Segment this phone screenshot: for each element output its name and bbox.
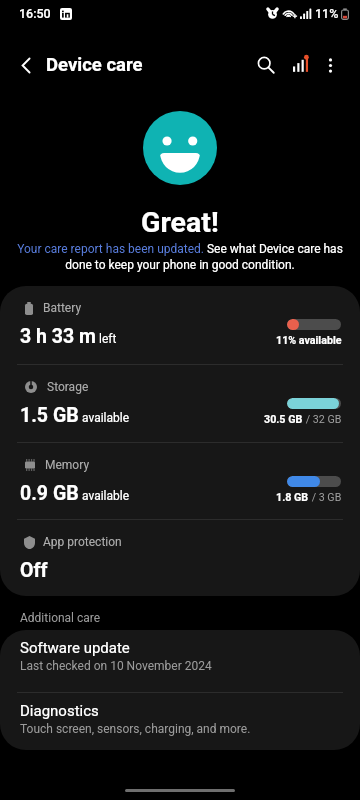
staticText: Last checked on 10 November 2024 xyxy=(20,659,212,673)
staticText: 11% xyxy=(315,6,339,21)
button[interactable]: Storage xyxy=(0,365,360,442)
staticText: / 32 GB xyxy=(303,413,342,426)
button[interactable]: More options xyxy=(309,44,351,86)
staticText: 3 h 33 m xyxy=(20,325,96,348)
staticText: Diagnostics xyxy=(20,702,99,720)
staticText: 30.5 GB xyxy=(264,413,303,426)
staticText: left xyxy=(99,332,117,346)
button[interactable]: Diagnostics xyxy=(0,693,360,750)
button[interactable]: App protection xyxy=(0,520,360,596)
button[interactable]: Software update xyxy=(0,630,360,692)
staticText: Your care report has been updated. See w… xyxy=(11,242,349,272)
staticText: Great! xyxy=(141,206,219,239)
button[interactable]: Usage statistics xyxy=(280,44,322,86)
staticText: Touch screen, sensors, charging, and mor… xyxy=(20,722,251,736)
staticText: Memory xyxy=(45,458,90,472)
button[interactable]: Search xyxy=(245,44,287,86)
staticText: Software update xyxy=(20,639,130,657)
button[interactable]: Navigate up xyxy=(5,44,47,86)
staticText: available xyxy=(82,489,130,503)
staticText: 1.8 GB xyxy=(276,491,309,504)
staticText: / 3 GB xyxy=(309,491,342,504)
button[interactable]: Battery xyxy=(0,286,360,364)
button[interactable]: Memory xyxy=(0,443,360,519)
staticText: Storage xyxy=(47,380,89,394)
staticText: 1.5 GB xyxy=(20,404,79,427)
staticText: 16:50 xyxy=(19,6,51,21)
staticText: 0.9 GB xyxy=(20,482,79,505)
staticText: Battery xyxy=(43,301,82,315)
staticText: available xyxy=(82,411,130,425)
staticText: Additional care xyxy=(20,611,101,625)
staticText: 11% available xyxy=(276,334,342,347)
staticText: Off xyxy=(20,559,48,582)
staticText: App protection xyxy=(43,535,122,549)
staticText: Device care xyxy=(46,54,143,76)
